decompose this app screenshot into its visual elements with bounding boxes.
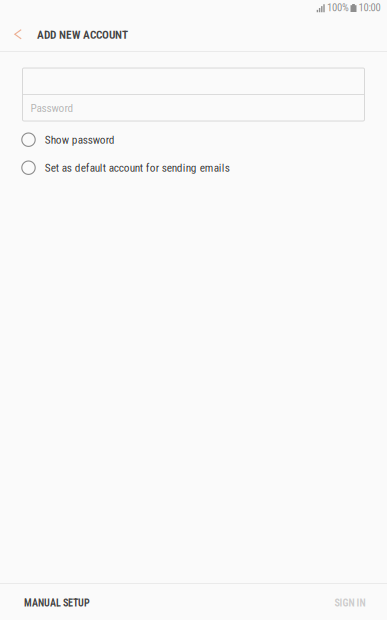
- button[interactable]: SIGN IN: [313, 584, 387, 620]
- staticText: ADD NEW ACCOUNT: [37, 28, 128, 42]
- staticText: Show password: [45, 133, 115, 146]
- staticText: 10:00: [358, 1, 380, 14]
- button[interactable]: MANUAL SETUP: [0, 584, 114, 620]
- staticText: MANUAL SETUP: [24, 597, 90, 609]
- button[interactable]: Show password: [0, 127, 387, 155]
- button[interactable]: Set as default account for sending email…: [0, 155, 387, 183]
- staticText: SIGN IN: [334, 597, 365, 609]
- button[interactable]: Back: [4, 15, 32, 51]
- staticText: Password: [30, 101, 73, 115]
- staticText: 100%: [327, 1, 349, 14]
- staticText: Set as default account for sending email…: [45, 161, 230, 174]
